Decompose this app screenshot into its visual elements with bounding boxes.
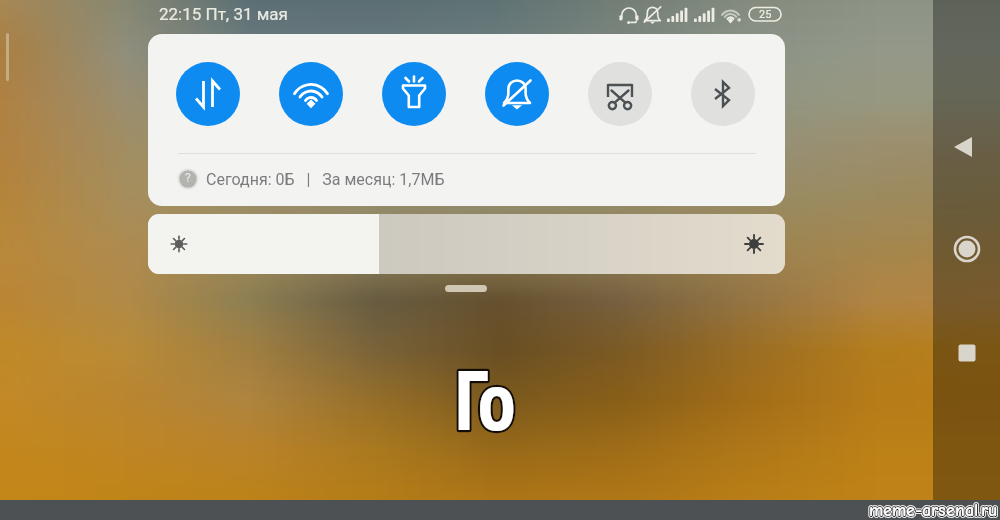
staticText: 22:15 Пт, 31 мая — [159, 4, 288, 24]
button[interactable]: Silent mode — [485, 62, 549, 126]
button[interactable]: Flashlight — [382, 62, 446, 126]
button[interactable]: Screenshot — [588, 62, 652, 126]
button[interactable]: Data usage help — [177, 168, 199, 190]
button[interactable]: Bluetooth — [691, 62, 755, 126]
staticText: Сегодня: 0Б | За месяц: 1,7МБ — [206, 170, 445, 189]
staticText: 25 — [759, 8, 772, 21]
button[interactable]: Recents — [950, 336, 984, 370]
button[interactable]: Brightness — [148, 214, 785, 274]
button[interactable]: Back — [948, 130, 982, 164]
staticText: ? — [185, 171, 191, 185]
button[interactable]: Home — [950, 232, 984, 266]
button[interactable]: Mobile data — [176, 62, 240, 126]
button[interactable]: Wi-Fi — [279, 62, 343, 126]
